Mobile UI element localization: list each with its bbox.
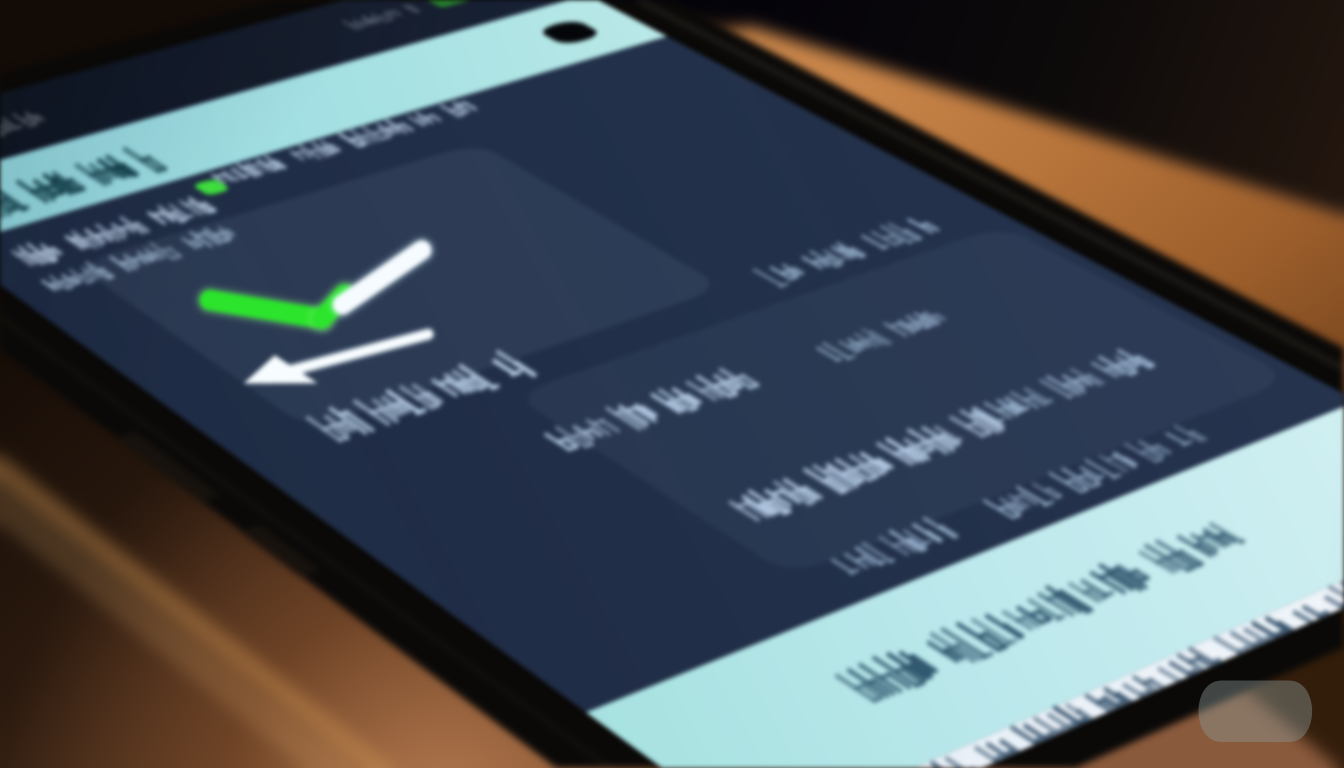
button[interactable]: Phone app screen xyxy=(0,0,1344,768)
